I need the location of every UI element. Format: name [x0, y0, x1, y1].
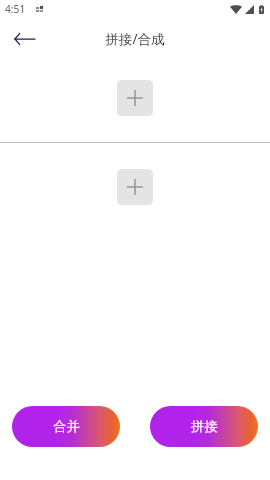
button[interactable]: 拼接 — [150, 406, 258, 447]
button[interactable]: 合并 — [12, 406, 120, 447]
button[interactable]: Add image — [117, 169, 153, 205]
staticText: 合并 — [53, 418, 80, 435]
staticText: 拼接 — [191, 418, 218, 435]
staticText: 拼接/合成 — [105, 30, 165, 48]
button[interactable]: Add image — [117, 80, 153, 116]
staticText: 4:51 — [5, 2, 26, 16]
button[interactable]: Back — [6, 21, 42, 57]
